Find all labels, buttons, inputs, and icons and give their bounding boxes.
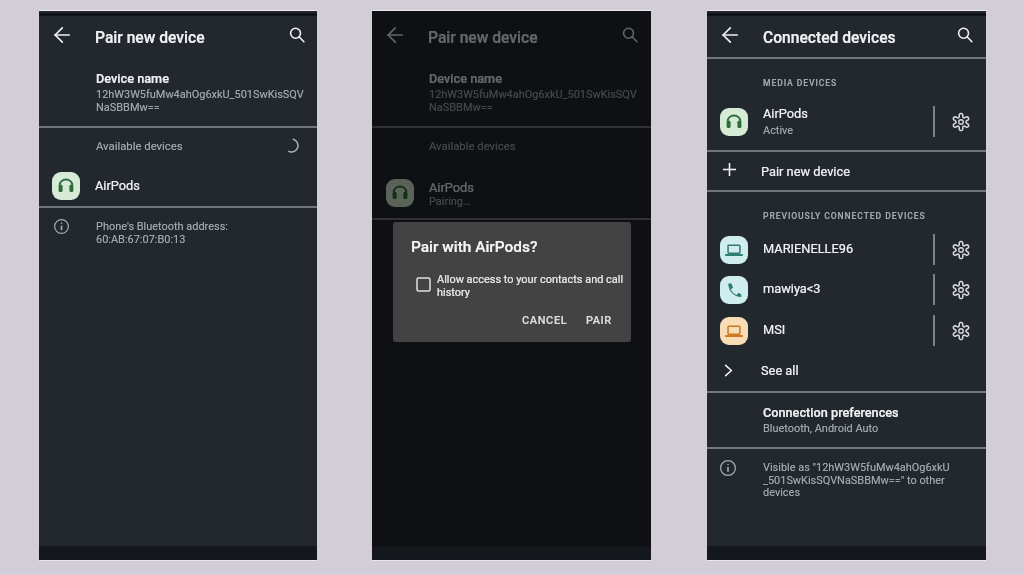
staticText: PAIR bbox=[586, 314, 612, 327]
button[interactable]: MSI bbox=[707, 310, 986, 351]
staticText: Connection preferences bbox=[763, 405, 899, 420]
button[interactable]: Search bbox=[947, 17, 983, 53]
staticText: Active bbox=[763, 124, 794, 137]
staticText: Pair new device bbox=[95, 29, 205, 47]
staticText: Pair new device bbox=[428, 29, 538, 47]
staticText: mawiya<3 bbox=[763, 281, 821, 296]
button[interactable]: See all bbox=[707, 350, 986, 390]
button[interactable]: Allow access to contacts checkbox bbox=[417, 278, 430, 291]
staticText: 12hW3W5fuMw4ahOg6xkU_501SwKisSQV NaSBBMw… bbox=[96, 88, 304, 113]
staticText: CANCEL bbox=[522, 314, 568, 327]
button[interactable]: AirPods bbox=[39, 164, 317, 209]
staticText: Available devices bbox=[429, 139, 516, 152]
button[interactable]: Device settings bbox=[940, 310, 981, 351]
staticText: PREVIOUSLY CONNECTED DEVICES bbox=[763, 211, 926, 221]
staticText: AirPods bbox=[95, 178, 140, 193]
button[interactable]: Back bbox=[712, 17, 748, 53]
button[interactable]: AirPods bbox=[707, 101, 986, 142]
staticText: Connected devices bbox=[763, 29, 896, 47]
staticText: 12hW3W5fuMw4ahOg6xkU_501SwKisSQV NaSBBMw… bbox=[429, 88, 637, 113]
staticText: MEDIA DEVICES bbox=[763, 78, 838, 88]
button[interactable]: Connection preferences bbox=[707, 393, 986, 447]
staticText: AirPods bbox=[763, 106, 808, 121]
staticText: Available devices bbox=[96, 139, 183, 152]
button[interactable]: Device settings bbox=[940, 269, 981, 310]
button[interactable]: Device settings bbox=[940, 229, 981, 270]
button[interactable]: Device settings bbox=[940, 101, 981, 142]
button[interactable]: mawiya<3 bbox=[707, 269, 986, 310]
staticText: Device name bbox=[96, 71, 169, 86]
button[interactable]: CANCEL bbox=[513, 307, 577, 334]
button[interactable]: PAIR bbox=[577, 307, 621, 334]
button[interactable]: AirPods bbox=[372, 171, 651, 219]
button[interactable]: Search bbox=[612, 17, 648, 53]
staticText: MARIENELLE96 bbox=[763, 241, 854, 256]
staticText: Pairing… bbox=[429, 195, 471, 208]
staticText: Pair new device bbox=[761, 164, 850, 179]
staticText: Device name bbox=[429, 71, 502, 86]
staticText: AirPods bbox=[429, 180, 474, 195]
staticText: See all bbox=[761, 363, 799, 378]
button[interactable]: Search bbox=[279, 17, 315, 53]
button[interactable]: MARIENELLE96 bbox=[707, 229, 986, 270]
staticText: Phone's Bluetooth address: 60:AB:67:07:B… bbox=[96, 220, 228, 245]
staticText: Allow access to your contacts and call h… bbox=[437, 273, 624, 298]
staticText: Visible as "12hW3W5fuMw4ahOg6xkU _501SwK… bbox=[763, 461, 950, 498]
staticText: MSI bbox=[763, 322, 786, 337]
staticText: Pair with AirPods? bbox=[411, 238, 538, 256]
button[interactable]: Back bbox=[377, 17, 413, 53]
button[interactable]: Pair new device bbox=[707, 151, 986, 191]
staticText: Bluetooth, Android Auto bbox=[763, 422, 879, 435]
button[interactable]: Back bbox=[44, 17, 80, 53]
